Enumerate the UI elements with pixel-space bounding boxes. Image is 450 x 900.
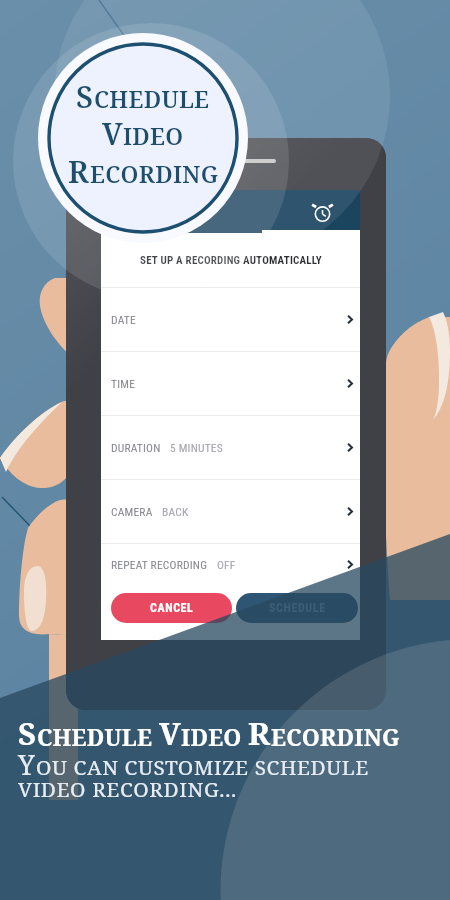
button[interactable]: SCHEDULE xyxy=(236,593,358,623)
staticText: DATE xyxy=(111,313,136,326)
staticText: TIME xyxy=(111,377,136,390)
staticText: OU CAN CUSTOMIZE SCHEDULE xyxy=(36,753,369,781)
staticText: CANCEL xyxy=(150,601,194,615)
staticText: 5 MINUTES xyxy=(170,441,223,454)
staticText: OFF xyxy=(217,558,236,571)
staticText: BACK xyxy=(162,505,189,518)
staticText: ECORDING xyxy=(90,158,219,190)
staticText: Y xyxy=(18,746,36,783)
button[interactable]: CANCEL xyxy=(111,593,232,623)
button[interactable]: DURATION xyxy=(101,416,360,479)
staticText: R xyxy=(68,151,90,192)
button[interactable]: CAMERA xyxy=(101,480,360,543)
staticText: V xyxy=(102,113,123,154)
button[interactable]: REPEAT RECORDING xyxy=(101,544,360,584)
staticText: V xyxy=(159,712,181,754)
staticText: SET UP A RECORDING AUTOMATICALLY xyxy=(140,254,322,267)
staticText: IDEO xyxy=(181,721,248,752)
staticText: SCHEDULE xyxy=(269,601,326,615)
staticText: REPEAT RECORDING xyxy=(111,558,208,571)
staticText: S xyxy=(76,76,94,117)
staticText: IDEO xyxy=(123,120,184,152)
staticText: DURATION xyxy=(111,441,161,454)
staticText: VIDEO RECORDING... xyxy=(18,775,237,803)
staticText: CAMERA xyxy=(111,505,153,518)
staticText: S xyxy=(18,712,37,754)
staticText: R xyxy=(248,712,271,754)
staticText: ECORDING xyxy=(271,721,400,752)
staticText: CHEDULE xyxy=(37,721,159,752)
staticText: CHEDULE xyxy=(94,83,210,115)
button[interactable]: TIME xyxy=(101,352,360,415)
button[interactable]: DATE xyxy=(101,288,360,351)
button[interactable]: Alarm schedule xyxy=(307,197,337,227)
